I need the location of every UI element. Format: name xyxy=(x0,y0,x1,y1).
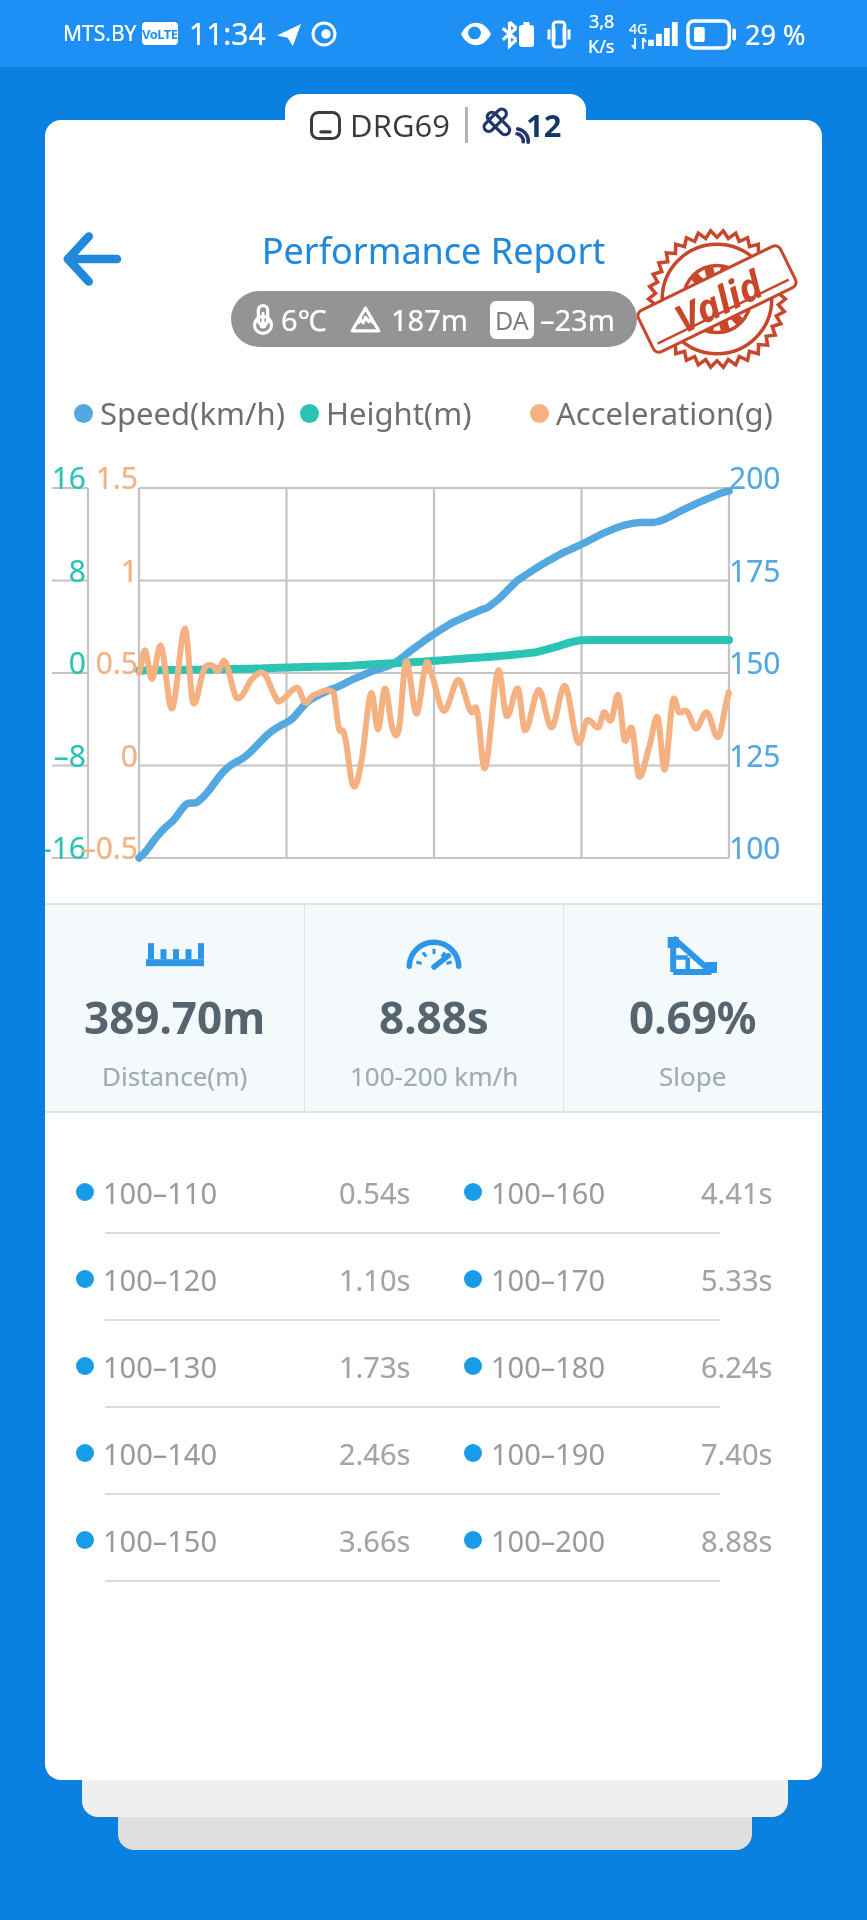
staticText: 1.10s xyxy=(339,1260,411,1299)
button[interactable]: 100–140 xyxy=(45,1410,433,1496)
staticText: –23m xyxy=(540,300,615,339)
staticText: 6.24s xyxy=(701,1347,773,1386)
staticText: –16 xyxy=(45,827,86,868)
staticText: 100–200 xyxy=(491,1521,606,1560)
staticText: 200 xyxy=(729,457,822,498)
staticText: 100–130 xyxy=(103,1347,218,1386)
staticText: 175 xyxy=(729,550,822,591)
staticText: 100 xyxy=(729,827,822,868)
staticText: –8 xyxy=(45,735,86,776)
staticText: Height(m) xyxy=(326,392,472,434)
button[interactable]: 100–170 xyxy=(433,1236,822,1322)
staticText: 100–140 xyxy=(103,1434,218,1473)
staticText: 100–150 xyxy=(103,1521,218,1560)
staticText: MTS.BY xyxy=(63,19,137,48)
staticText: 11:34 xyxy=(189,13,266,54)
staticText: 0.69% xyxy=(629,987,757,1047)
staticText: 1.5 xyxy=(45,457,138,498)
button[interactable]: 8.88s xyxy=(305,905,563,1111)
staticText: 6℃ xyxy=(281,300,327,339)
staticText: –0.5 xyxy=(45,827,138,868)
button[interactable]: 100–110 xyxy=(45,1149,433,1235)
staticText: 7.40s xyxy=(701,1434,773,1473)
staticText: 150 xyxy=(729,642,822,683)
staticText: 5.33s xyxy=(701,1260,773,1299)
staticText: Performance Report xyxy=(45,226,822,275)
staticText: DA xyxy=(495,303,529,337)
staticText: 100–110 xyxy=(103,1173,218,1212)
staticText: Speed(km/h) xyxy=(100,392,285,434)
staticText: 8.88s xyxy=(701,1521,773,1560)
staticText: 0 xyxy=(45,642,86,683)
staticText: 1 xyxy=(45,550,138,591)
staticText: 4.41s xyxy=(701,1173,773,1212)
staticText: 389.70m xyxy=(84,987,266,1047)
button[interactable]: 100–160 xyxy=(433,1149,822,1235)
staticText: 100–190 xyxy=(491,1434,606,1473)
button[interactable]: DRG69 xyxy=(285,94,586,155)
staticText: 1.73s xyxy=(339,1347,411,1386)
button[interactable]: 100–130 xyxy=(45,1323,433,1409)
staticText: 3,8 xyxy=(589,9,615,34)
staticText: 12 xyxy=(526,104,562,146)
staticText: 8.88s xyxy=(379,987,489,1047)
staticText: Slope xyxy=(659,1058,727,1093)
button[interactable]: 100–190 xyxy=(433,1410,822,1496)
staticText: 0 xyxy=(45,735,138,776)
button[interactable]: 100–120 xyxy=(45,1236,433,1322)
button[interactable]: 389.70m xyxy=(45,905,304,1111)
staticText: 8 xyxy=(45,550,86,591)
staticText: DRG69 xyxy=(350,104,450,146)
staticText: 100–120 xyxy=(103,1260,218,1299)
button[interactable]: 100–150 xyxy=(45,1497,433,1583)
staticText: 0.5 xyxy=(45,642,138,683)
staticText: 125 xyxy=(729,735,822,776)
staticText: 100–170 xyxy=(491,1260,606,1299)
staticText: 29 % xyxy=(745,16,806,53)
staticText: 16 xyxy=(45,457,86,498)
staticText: Acceleration(g) xyxy=(556,392,773,434)
button[interactable]: 100–200 xyxy=(433,1497,822,1583)
staticText: 100-200 km/h xyxy=(350,1058,519,1093)
staticText: 2.46s xyxy=(339,1434,411,1473)
button[interactable]: 100–180 xyxy=(433,1323,822,1409)
staticText: Valid xyxy=(665,256,771,344)
staticText: 3.66s xyxy=(339,1521,411,1560)
staticText: 0.54s xyxy=(339,1173,411,1212)
staticText: Distance(m) xyxy=(102,1058,248,1093)
staticText: 187m xyxy=(391,300,468,339)
staticText: K/s xyxy=(588,34,615,59)
button[interactable]: 0.69% xyxy=(564,905,822,1111)
staticText: 100–180 xyxy=(491,1347,606,1386)
button[interactable]: Back xyxy=(45,212,141,306)
staticText: VoLTE xyxy=(142,25,178,43)
staticText: 4G xyxy=(629,19,648,38)
staticText: 100–160 xyxy=(491,1173,606,1212)
